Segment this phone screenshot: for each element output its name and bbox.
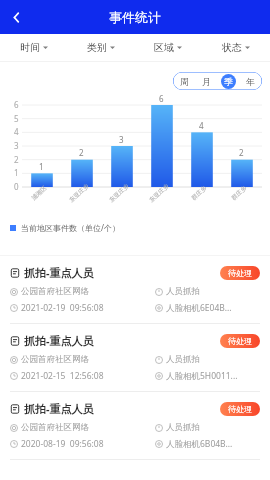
staticText: 2 <box>79 147 84 158</box>
staticText: 6 <box>159 93 164 104</box>
staticText: 群庄乡 <box>190 184 208 202</box>
button[interactable]: 月 <box>199 74 214 89</box>
staticText: 月 <box>202 76 211 87</box>
staticText: 待处理 <box>228 268 252 278</box>
button[interactable]: 周 <box>177 74 192 89</box>
button[interactable]: 季 <box>221 74 236 89</box>
staticText: 类别 <box>87 41 107 54</box>
staticText: 4 <box>199 120 204 131</box>
staticText: 人员抓拍 <box>166 354 200 365</box>
staticText: 公园首府社区网络 <box>21 286 89 297</box>
staticText: 6 <box>14 99 19 110</box>
staticText: 抓拍-重点人员 <box>24 401 94 416</box>
button[interactable]: 待处理 <box>220 266 260 280</box>
staticText: 公园首府社区网络 <box>21 354 89 365</box>
button[interactable]: 抓拍-重点人员 <box>0 324 270 392</box>
button[interactable]: 待处理 <box>220 402 260 416</box>
staticText: 东亚庄乡 <box>67 182 91 204</box>
staticText: 2 <box>14 154 19 165</box>
staticText: 周 <box>180 76 189 87</box>
staticText: 2020-08-19 09:56:08 <box>21 438 104 450</box>
staticText: 1 <box>14 167 19 178</box>
staticText: 2021-02-19 09:56:08 <box>21 302 104 314</box>
staticText: 时间 <box>20 41 40 54</box>
staticText: 当前地区事件数（单位/个） <box>21 222 120 233</box>
staticText: 浦湘区 <box>30 184 48 202</box>
staticText: 0 <box>14 181 19 192</box>
staticText: 事件统计 <box>109 9 161 25</box>
staticText: 2021-02-15 12:56:08 <box>21 370 104 382</box>
button[interactable]: 时间 <box>0 34 67 61</box>
staticText: 人脸相机6B04B... <box>166 438 233 450</box>
staticText: 抓拍-重点人员 <box>24 265 94 280</box>
staticText: 人员抓拍 <box>166 286 200 297</box>
button[interactable]: 抓拍-重点人员 <box>0 392 270 460</box>
staticText: 2 <box>239 147 244 158</box>
staticText: 人脸相机6E04B... <box>166 302 232 314</box>
staticText: 人脸相机5H0011... <box>166 370 238 382</box>
button[interactable]: 年 <box>243 74 258 89</box>
button[interactable]: 状态 <box>202 34 270 61</box>
staticText: 4 <box>14 126 19 137</box>
staticText: 待处理 <box>228 404 252 414</box>
staticText: 状态 <box>222 41 242 54</box>
staticText: 3 <box>119 134 124 145</box>
staticText: 5 <box>14 113 19 124</box>
staticText: 1 <box>39 161 44 172</box>
staticText: 待处理 <box>228 336 252 346</box>
button[interactable]: 区域 <box>134 34 202 61</box>
staticText: 东亚庄乡 <box>107 182 131 204</box>
button[interactable]: 待处理 <box>220 334 260 348</box>
staticText: 群庄乡 <box>230 184 248 202</box>
button[interactable]: 返回 <box>0 1 32 33</box>
staticText: 东亚庄乡 <box>147 182 171 204</box>
staticText: 公园首府社区网络 <box>21 422 89 433</box>
staticText: 抓拍-重点人员 <box>24 333 94 348</box>
staticText: 3 <box>14 140 19 151</box>
button[interactable]: 类别 <box>67 34 134 61</box>
button[interactable]: 抓拍-重点人员 <box>0 256 270 324</box>
staticText: 年 <box>246 76 255 87</box>
staticText: 区域 <box>154 41 174 54</box>
staticText: 季 <box>224 76 233 87</box>
staticText: 人员抓拍 <box>166 422 200 433</box>
